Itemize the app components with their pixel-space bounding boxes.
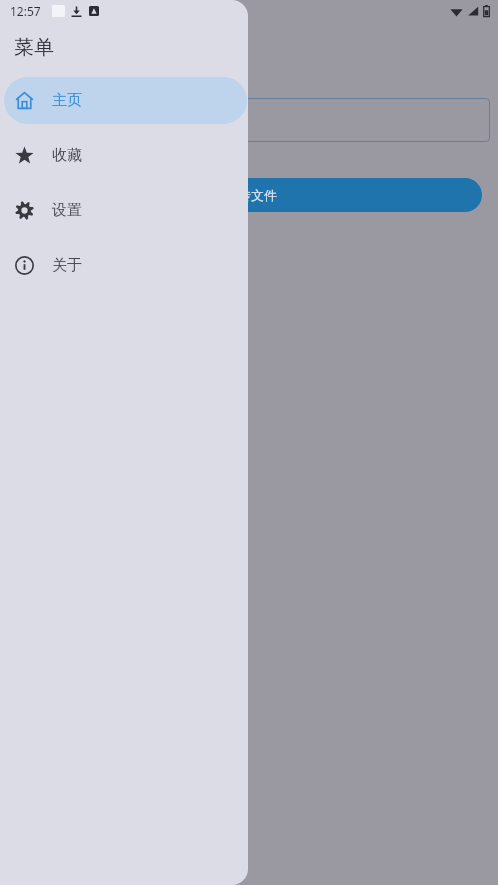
button[interactable]: 收藏 (4, 132, 247, 179)
button[interactable] (8, 98, 490, 142)
staticText: 主页 (52, 91, 82, 110)
staticText: 收藏 (52, 146, 82, 165)
button[interactable]: 设置 (4, 187, 247, 234)
staticText: 关于 (52, 256, 82, 275)
staticText: 菜单 (14, 35, 54, 60)
button[interactable]: 上传文件 (20, 178, 482, 212)
staticText: 上传文件 (225, 187, 277, 203)
staticText: 设置 (52, 201, 82, 220)
button[interactable]: 关于 (4, 242, 247, 289)
staticText: http://172.16.1.15:4719 (8, 149, 150, 167)
button[interactable]: 主页 (4, 77, 247, 124)
staticText: 12:57 (10, 3, 41, 19)
